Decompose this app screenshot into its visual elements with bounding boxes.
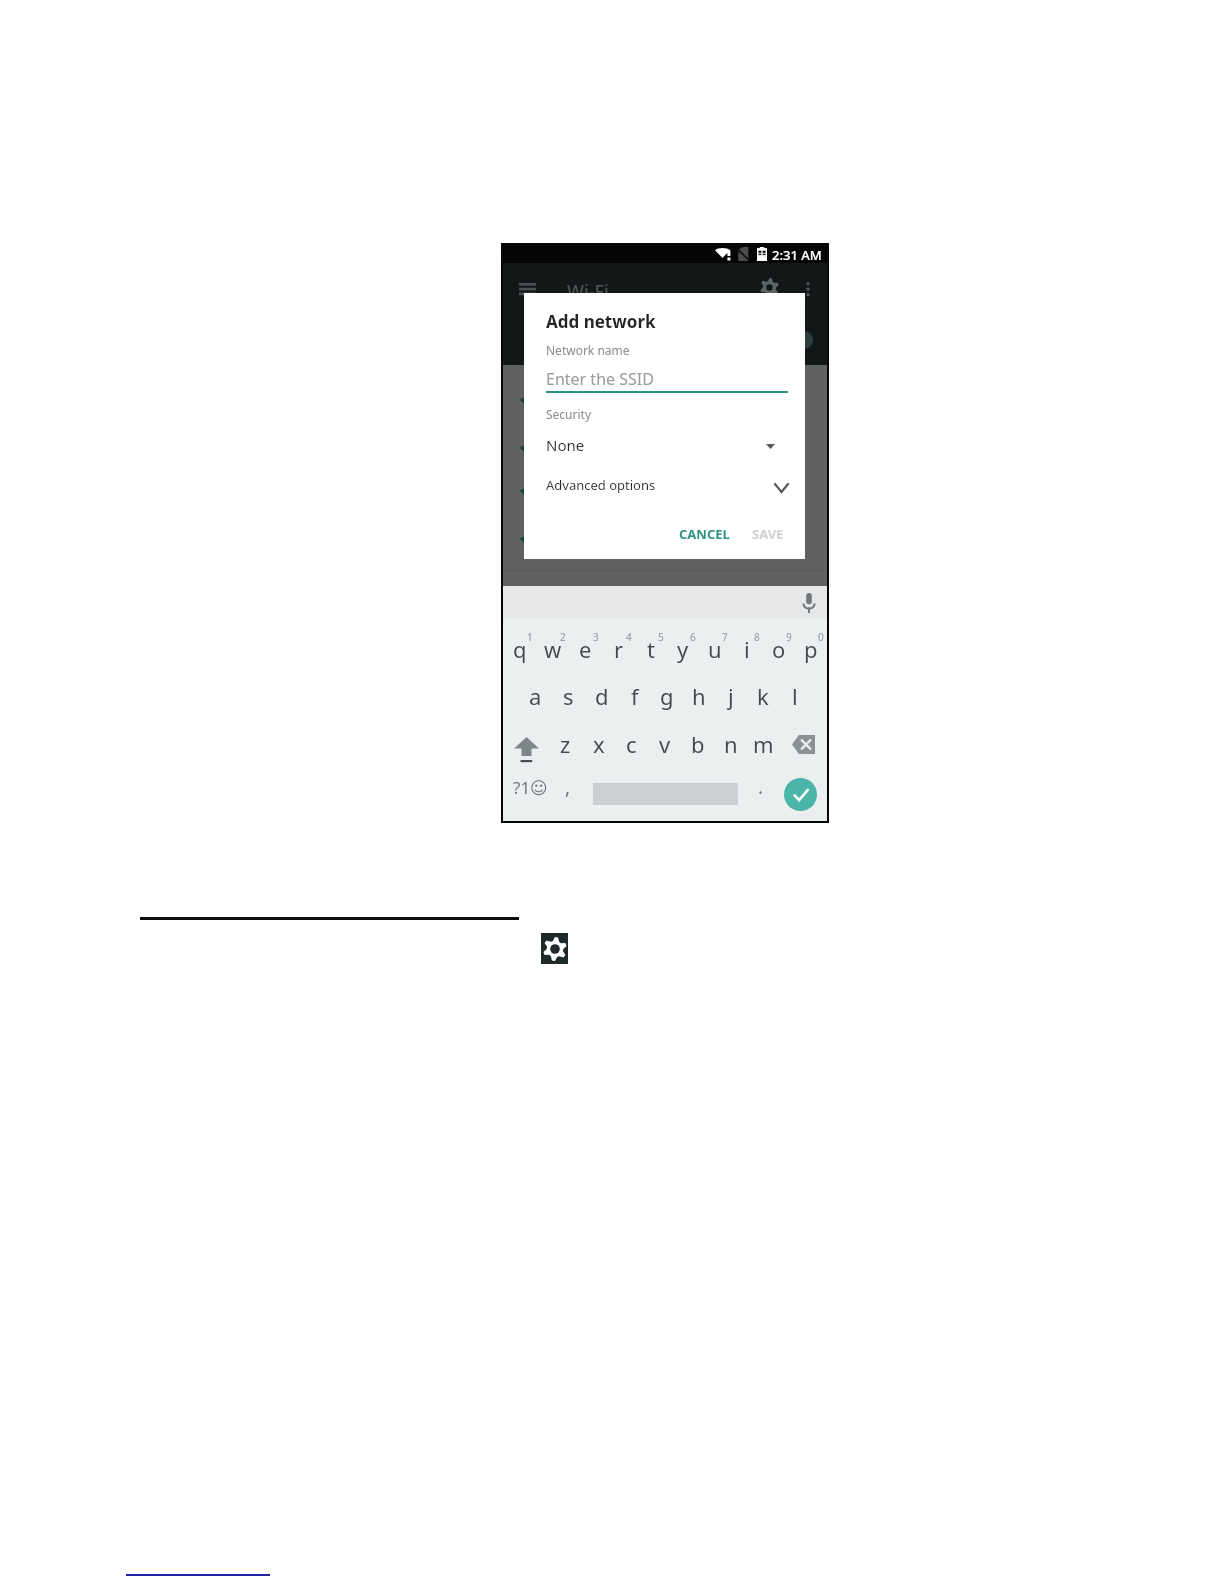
staticText: 4: [626, 630, 632, 644]
button[interactable]: g: [651, 678, 683, 714]
staticText: n: [724, 729, 738, 759]
button[interactable]: 5: [635, 627, 667, 672]
staticText: .: [758, 774, 764, 800]
button[interactable]: j: [715, 678, 747, 714]
button[interactable]: k: [747, 678, 779, 714]
button[interactable]: z: [549, 726, 582, 762]
staticText: Network name: [546, 342, 630, 358]
staticText: r: [614, 634, 624, 664]
staticText: q: [513, 634, 527, 664]
button[interactable]: Delete: [780, 726, 827, 762]
staticText: w: [544, 634, 562, 664]
staticText: e: [579, 634, 592, 664]
staticText: c: [626, 729, 637, 759]
staticText: Enter the SSID: [546, 368, 654, 390]
staticText: h: [692, 681, 706, 711]
staticText: f: [631, 681, 639, 711]
staticText: d: [595, 681, 609, 711]
button[interactable]: v: [648, 726, 681, 762]
button[interactable]: Voice input: [797, 591, 821, 615]
staticText: CANCEL: [679, 525, 730, 543]
button[interactable]: d: [585, 678, 618, 714]
staticText: x: [593, 729, 605, 759]
button[interactable]: x: [582, 726, 615, 762]
staticText: 9: [786, 630, 792, 644]
staticText: 8: [754, 630, 760, 644]
button[interactable]: 7: [699, 627, 731, 672]
staticText: 2:31 AM: [772, 246, 822, 262]
button[interactable]: 3: [569, 627, 602, 672]
button[interactable]: 2: [536, 627, 569, 672]
button[interactable]: Enter: [772, 768, 827, 820]
staticText: t: [647, 634, 655, 664]
button[interactable]: SAVE: [745, 521, 791, 547]
button[interactable]: Shift: [503, 726, 549, 762]
staticText: ?1☺: [513, 776, 548, 799]
staticText: y: [677, 634, 689, 664]
button[interactable]: c: [615, 726, 648, 762]
staticText: m: [753, 729, 774, 759]
staticText: 1: [527, 630, 533, 644]
staticText: Security: [546, 406, 592, 422]
staticText: Wi-Fi: [567, 279, 609, 301]
button[interactable]: Open navigation drawer: [515, 278, 539, 300]
button[interactable]: Period: [746, 768, 776, 806]
staticText: 3: [593, 630, 599, 644]
button[interactable]: 1: [503, 627, 536, 672]
button[interactable]: 6: [667, 627, 699, 672]
staticText: v: [659, 729, 671, 759]
button[interactable]: Wi-Fi settings: [756, 274, 782, 300]
staticText: u: [708, 634, 722, 664]
staticText: z: [560, 729, 571, 759]
button[interactable]: Settings: [541, 933, 568, 964]
staticText: o: [772, 634, 786, 664]
button[interactable]: f: [618, 678, 651, 714]
staticText: j: [728, 681, 734, 711]
staticText: p: [804, 634, 818, 664]
staticText: Add network: [546, 310, 656, 333]
button[interactable]: CANCEL: [672, 521, 737, 547]
staticText: ,: [565, 774, 571, 800]
button[interactable]: b: [681, 726, 714, 762]
button[interactable]: Advanced options: [538, 473, 796, 497]
staticText: 7: [722, 630, 728, 644]
staticText: 2: [560, 630, 566, 644]
button[interactable]: h: [683, 678, 715, 714]
staticText: b: [691, 729, 705, 759]
button[interactable]: 9: [763, 627, 795, 672]
button[interactable]: a: [519, 678, 552, 714]
button[interactable]: l: [779, 678, 811, 714]
button[interactable]: Comma: [551, 768, 585, 806]
button[interactable]: 4: [602, 627, 635, 672]
button[interactable]: n: [714, 726, 747, 762]
staticText: l: [792, 681, 798, 711]
staticText: 0: [818, 630, 824, 644]
staticText: 6: [690, 630, 696, 644]
staticText: SAVE: [752, 525, 784, 543]
button[interactable]: More options: [797, 278, 819, 300]
staticText: i: [744, 634, 750, 664]
staticText: k: [757, 681, 769, 711]
button[interactable]: 0: [795, 627, 827, 672]
staticText: Advanced options: [546, 476, 656, 494]
button[interactable]: s: [552, 678, 585, 714]
button[interactable]: Symbols: [506, 768, 554, 806]
staticText: 5: [658, 630, 664, 644]
staticText: a: [529, 681, 542, 711]
button[interactable]: Space: [588, 768, 742, 819]
button[interactable]: 8: [731, 627, 763, 672]
button[interactable]: m: [747, 726, 780, 762]
staticText: None: [546, 435, 585, 455]
staticText: s: [563, 681, 574, 711]
staticText: g: [660, 681, 674, 711]
button[interactable]: None: [538, 432, 794, 457]
